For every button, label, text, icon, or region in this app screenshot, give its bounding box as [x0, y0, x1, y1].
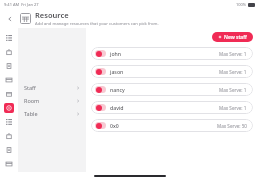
staticText: david: [110, 104, 124, 111]
button[interactable]: Room: [18, 94, 86, 107]
staticText: Room: [24, 97, 40, 104]
button[interactable]: Toggle availability: [91, 119, 253, 132]
staticText: jason: [110, 68, 124, 75]
button[interactable]: Dashboard: [4, 33, 14, 43]
staticText: nancy: [110, 86, 125, 93]
button[interactable]: Products: [4, 89, 14, 99]
button[interactable]: Table: [18, 107, 86, 120]
staticText: Staff: [24, 84, 36, 91]
button[interactable]: Calendar: [4, 75, 14, 85]
button[interactable]: Marketing: [4, 131, 14, 141]
button[interactable]: Toggle availability: [91, 65, 253, 78]
button[interactable]: Toggle availability: [95, 122, 106, 129]
button[interactable]: Orders: [4, 61, 14, 71]
staticText: 0x0: [110, 122, 119, 129]
button[interactable]: Toggle availability: [91, 101, 253, 114]
button[interactable]: Toggle availability: [95, 86, 106, 93]
staticText: Max Serve: 50: [217, 123, 247, 129]
button[interactable]: Staff: [18, 81, 86, 94]
button[interactable]: Store: [4, 47, 14, 57]
staticText: Max Serve: 1: [219, 69, 247, 75]
staticText: Max Serve: 1: [219, 51, 247, 57]
button[interactable]: Toggle availability: [95, 50, 106, 57]
staticText: Add and manage resources that your custo…: [35, 21, 159, 27]
button[interactable]: Back: [4, 13, 16, 25]
button[interactable]: Payments: [4, 159, 14, 169]
button[interactable]: New staff: [212, 32, 253, 42]
button[interactable]: Toggle availability: [91, 47, 253, 60]
staticText: 100%: [236, 2, 247, 7]
button[interactable]: Reports: [4, 117, 14, 127]
button[interactable]: Toggle availability: [95, 68, 106, 75]
staticText: 9:41 AM Fri Jan 27: [4, 2, 39, 7]
staticText: Max Serve: 1: [219, 105, 247, 111]
button[interactable]: Resources: [4, 103, 14, 113]
staticText: Max Serve: 1: [219, 87, 247, 93]
staticText: Resource: [35, 10, 69, 20]
staticText: john: [110, 50, 122, 57]
staticText: Table: [24, 110, 38, 117]
button[interactable]: Toggle availability: [91, 83, 253, 96]
button[interactable]: Toggle availability: [95, 104, 106, 111]
staticText: New staff: [224, 34, 247, 41]
button[interactable]: Customers: [4, 145, 14, 155]
